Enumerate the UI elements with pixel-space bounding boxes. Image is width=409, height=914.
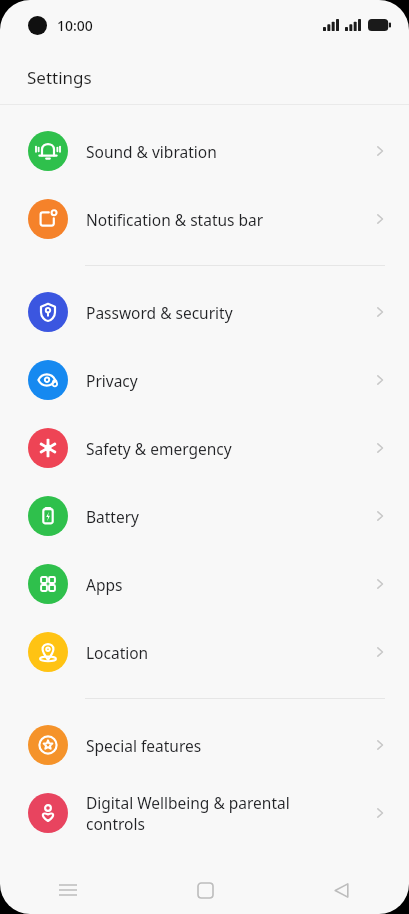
- button[interactable]: Safety & emergency: [0, 414, 409, 482]
- button[interactable]: Digital Wellbeing & parental controls: [0, 779, 409, 847]
- button[interactable]: Back: [317, 866, 365, 914]
- button[interactable]: Location: [0, 618, 409, 686]
- staticText: Notification & status bar: [86, 209, 363, 230]
- button[interactable]: Home: [181, 866, 229, 914]
- staticText: Privacy: [86, 370, 363, 391]
- staticText: Special features: [86, 735, 363, 756]
- staticText: Battery: [86, 506, 363, 527]
- button[interactable]: Password & security: [0, 278, 409, 346]
- staticText: Digital Wellbeing & parental controls: [86, 792, 363, 835]
- button[interactable]: Notification & status bar: [0, 185, 409, 253]
- staticText: Location: [86, 642, 363, 663]
- staticText: Apps: [86, 574, 363, 595]
- button[interactable]: Privacy: [0, 346, 409, 414]
- button[interactable]: Recent apps: [44, 866, 92, 914]
- button[interactable]: Sound & vibration: [0, 117, 409, 185]
- button[interactable]: Special features: [0, 711, 409, 779]
- staticText: Settings: [27, 66, 92, 89]
- button[interactable]: Apps: [0, 550, 409, 618]
- staticText: Password & security: [86, 302, 363, 323]
- staticText: 10:00: [57, 16, 93, 35]
- button[interactable]: Battery: [0, 482, 409, 550]
- staticText: Sound & vibration: [86, 141, 363, 162]
- staticText: Safety & emergency: [86, 438, 363, 459]
